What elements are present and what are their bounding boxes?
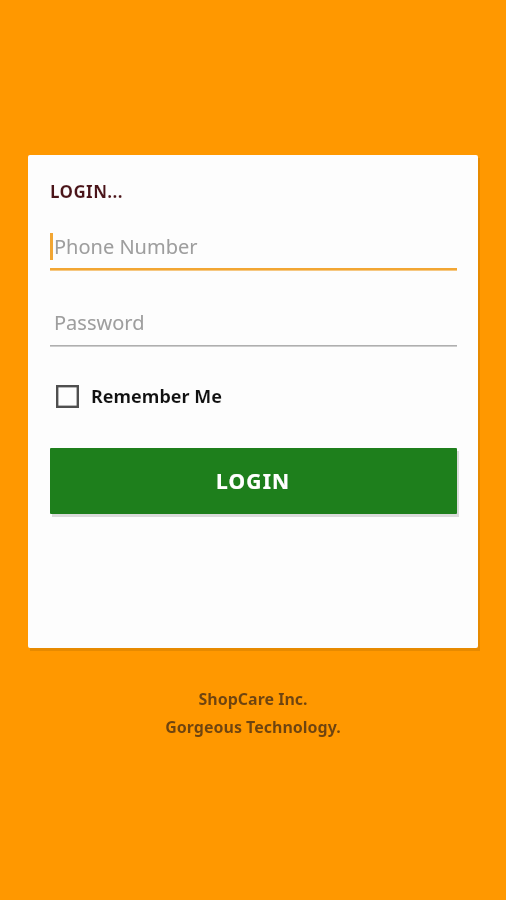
staticText: LOGIN... bbox=[50, 180, 123, 203]
staticText: Gorgeous Technology. bbox=[165, 716, 341, 738]
staticText: Password bbox=[54, 309, 145, 336]
staticText: ShopCare Inc. bbox=[198, 688, 308, 710]
button[interactable]: Phone Number bbox=[50, 227, 457, 271]
button[interactable]: Remember Me bbox=[56, 379, 222, 413]
button[interactable]: LOGIN bbox=[50, 448, 457, 514]
staticText: LOGIN bbox=[216, 467, 291, 496]
staticText: Remember Me bbox=[91, 384, 222, 409]
button[interactable]: Password bbox=[50, 303, 457, 347]
staticText: Phone Number bbox=[54, 233, 198, 260]
